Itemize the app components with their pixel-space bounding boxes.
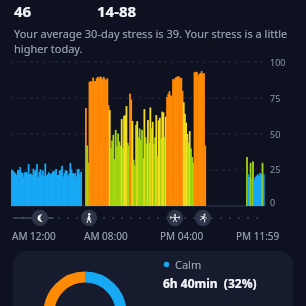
staticText: AM 12:00 [12,229,56,243]
button[interactable]: Calm [13,251,293,306]
staticText: 14-88 [97,1,137,21]
staticText: 46 [14,1,32,21]
staticText: 25 [270,163,281,175]
staticText: PM 04:00 [160,229,204,243]
staticText: 75 [270,92,281,104]
staticText: Calm [175,257,202,272]
staticText: 50 [270,128,281,140]
staticText: 100 [270,56,286,68]
staticText: Your average 30-day stress is 39. Your s… [14,26,290,56]
staticText: AM 08:00 [84,229,128,243]
staticText: PM 11:59 [236,229,280,243]
staticText: 6h 40min (32%) [163,275,257,291]
staticText: 0 [270,196,276,208]
button[interactable]: 100 [0,56,306,208]
